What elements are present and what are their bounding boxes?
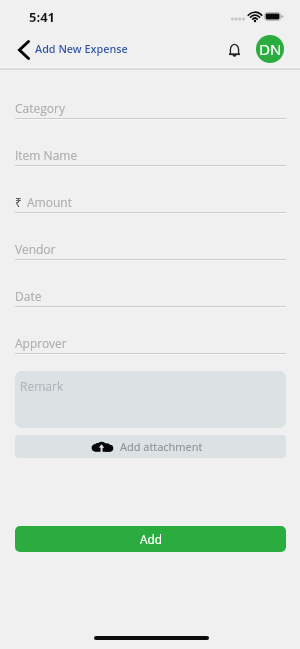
button[interactable]: Add New Expense (35, 41, 128, 56)
button[interactable]: Remark (15, 371, 286, 428)
staticText: Amount (27, 194, 72, 210)
staticText: Vendor (15, 241, 56, 257)
staticText: Add attachment (120, 439, 203, 454)
button[interactable]: Add (15, 526, 286, 552)
staticText: Approver (15, 335, 67, 351)
button[interactable]: Category (15, 100, 286, 116)
button[interactable]: Profile DN (256, 35, 284, 63)
staticText: ₹ (15, 194, 22, 210)
button[interactable]: Add attachment (15, 435, 286, 458)
staticText: 5:41 (29, 8, 55, 26)
button[interactable]: Notifications (221, 37, 247, 63)
staticText: Remark (20, 378, 64, 394)
staticText: Category (15, 100, 65, 116)
button[interactable]: Item Name (15, 147, 286, 163)
staticText: Item Name (15, 147, 78, 163)
button[interactable]: Approver (15, 335, 286, 351)
staticText: DN (259, 39, 282, 60)
button[interactable]: Date (15, 288, 286, 304)
button[interactable]: Vendor (15, 241, 286, 257)
button[interactable]: ₹ (15, 194, 286, 210)
button[interactable]: Back (11, 34, 36, 66)
staticText: Date (15, 288, 42, 304)
staticText: Add (140, 531, 162, 547)
